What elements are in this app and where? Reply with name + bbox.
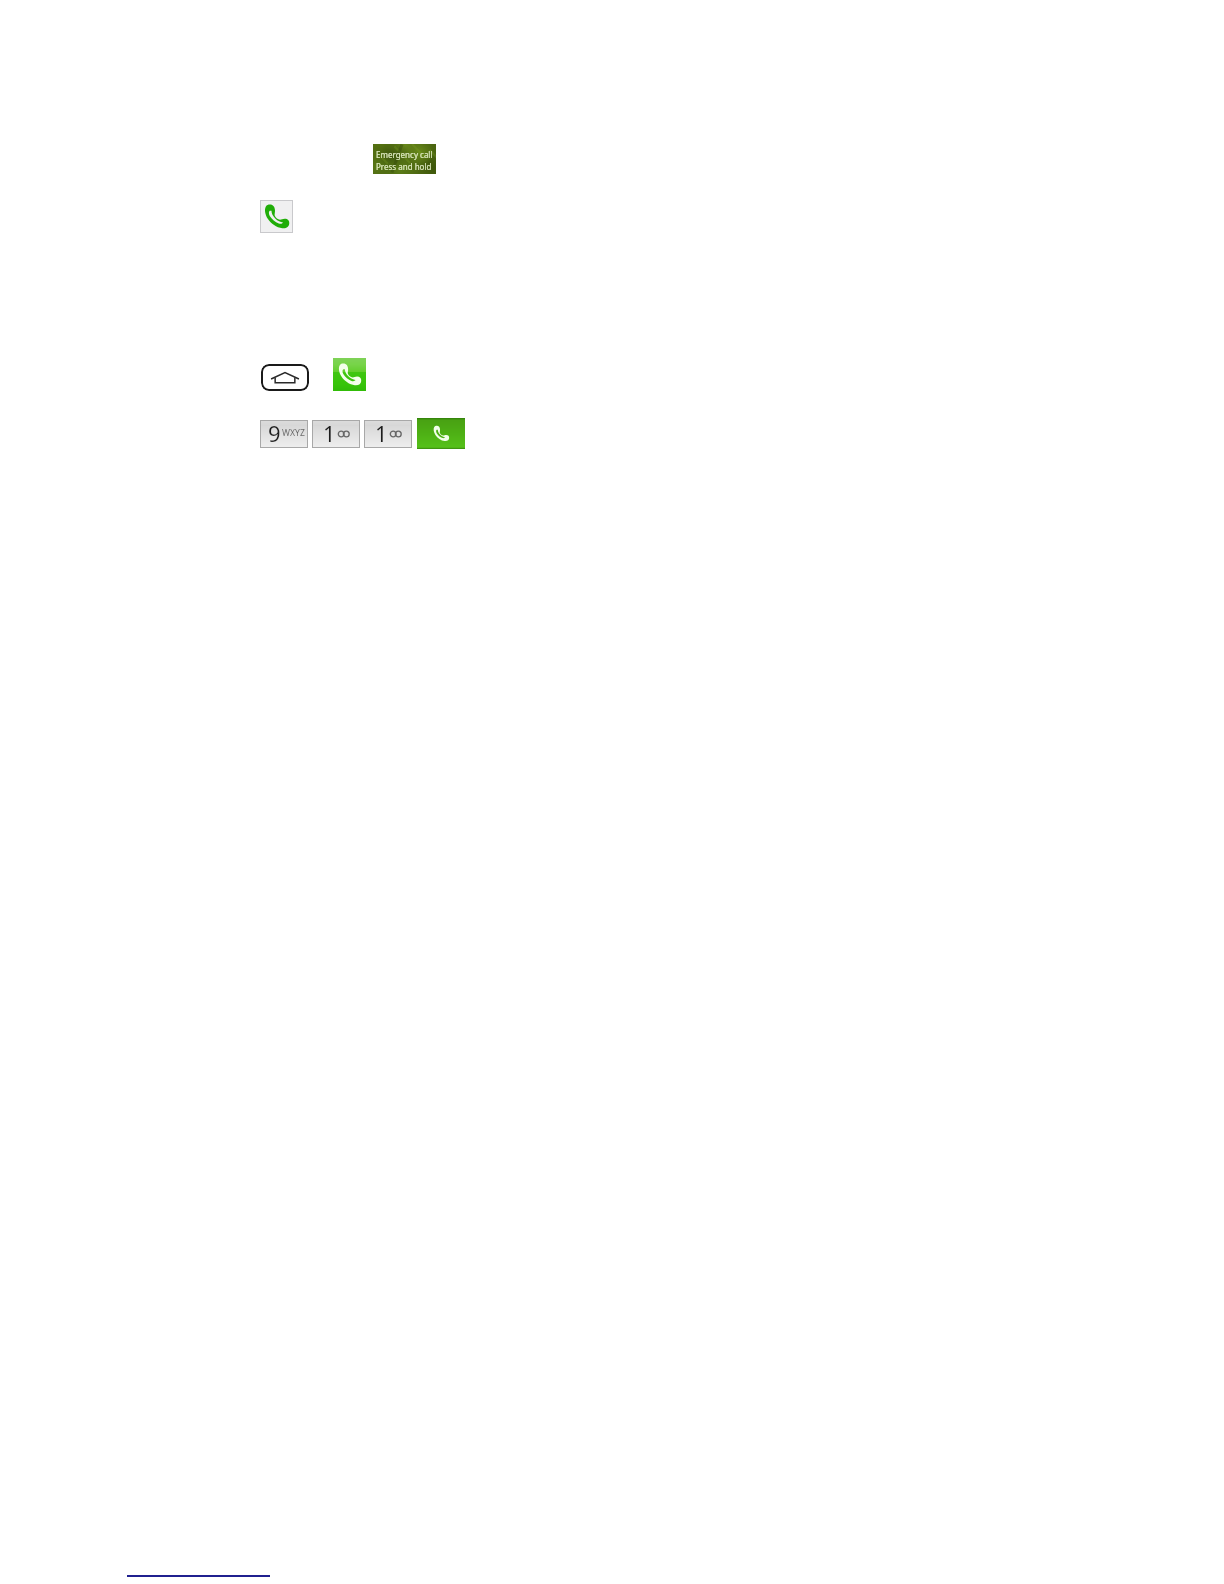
button[interactable]: 1 voicemail	[312, 420, 360, 448]
button[interactable]: Call	[417, 418, 465, 449]
staticText: 9	[268, 418, 281, 446]
button[interactable]: Call	[333, 358, 366, 391]
button[interactable]: Emergency call	[373, 144, 436, 174]
button[interactable]: 1 voicemail	[364, 420, 412, 448]
staticText: Emergency call	[376, 149, 433, 160]
button[interactable]: Home	[261, 364, 309, 391]
button[interactable]: Call	[260, 200, 293, 233]
button[interactable]: 9 WXYZ	[260, 420, 308, 448]
staticText: Press and hold	[376, 161, 432, 172]
staticText: WXYZ	[282, 427, 305, 439]
staticText: 1	[375, 418, 388, 446]
staticText: 1	[323, 418, 336, 446]
